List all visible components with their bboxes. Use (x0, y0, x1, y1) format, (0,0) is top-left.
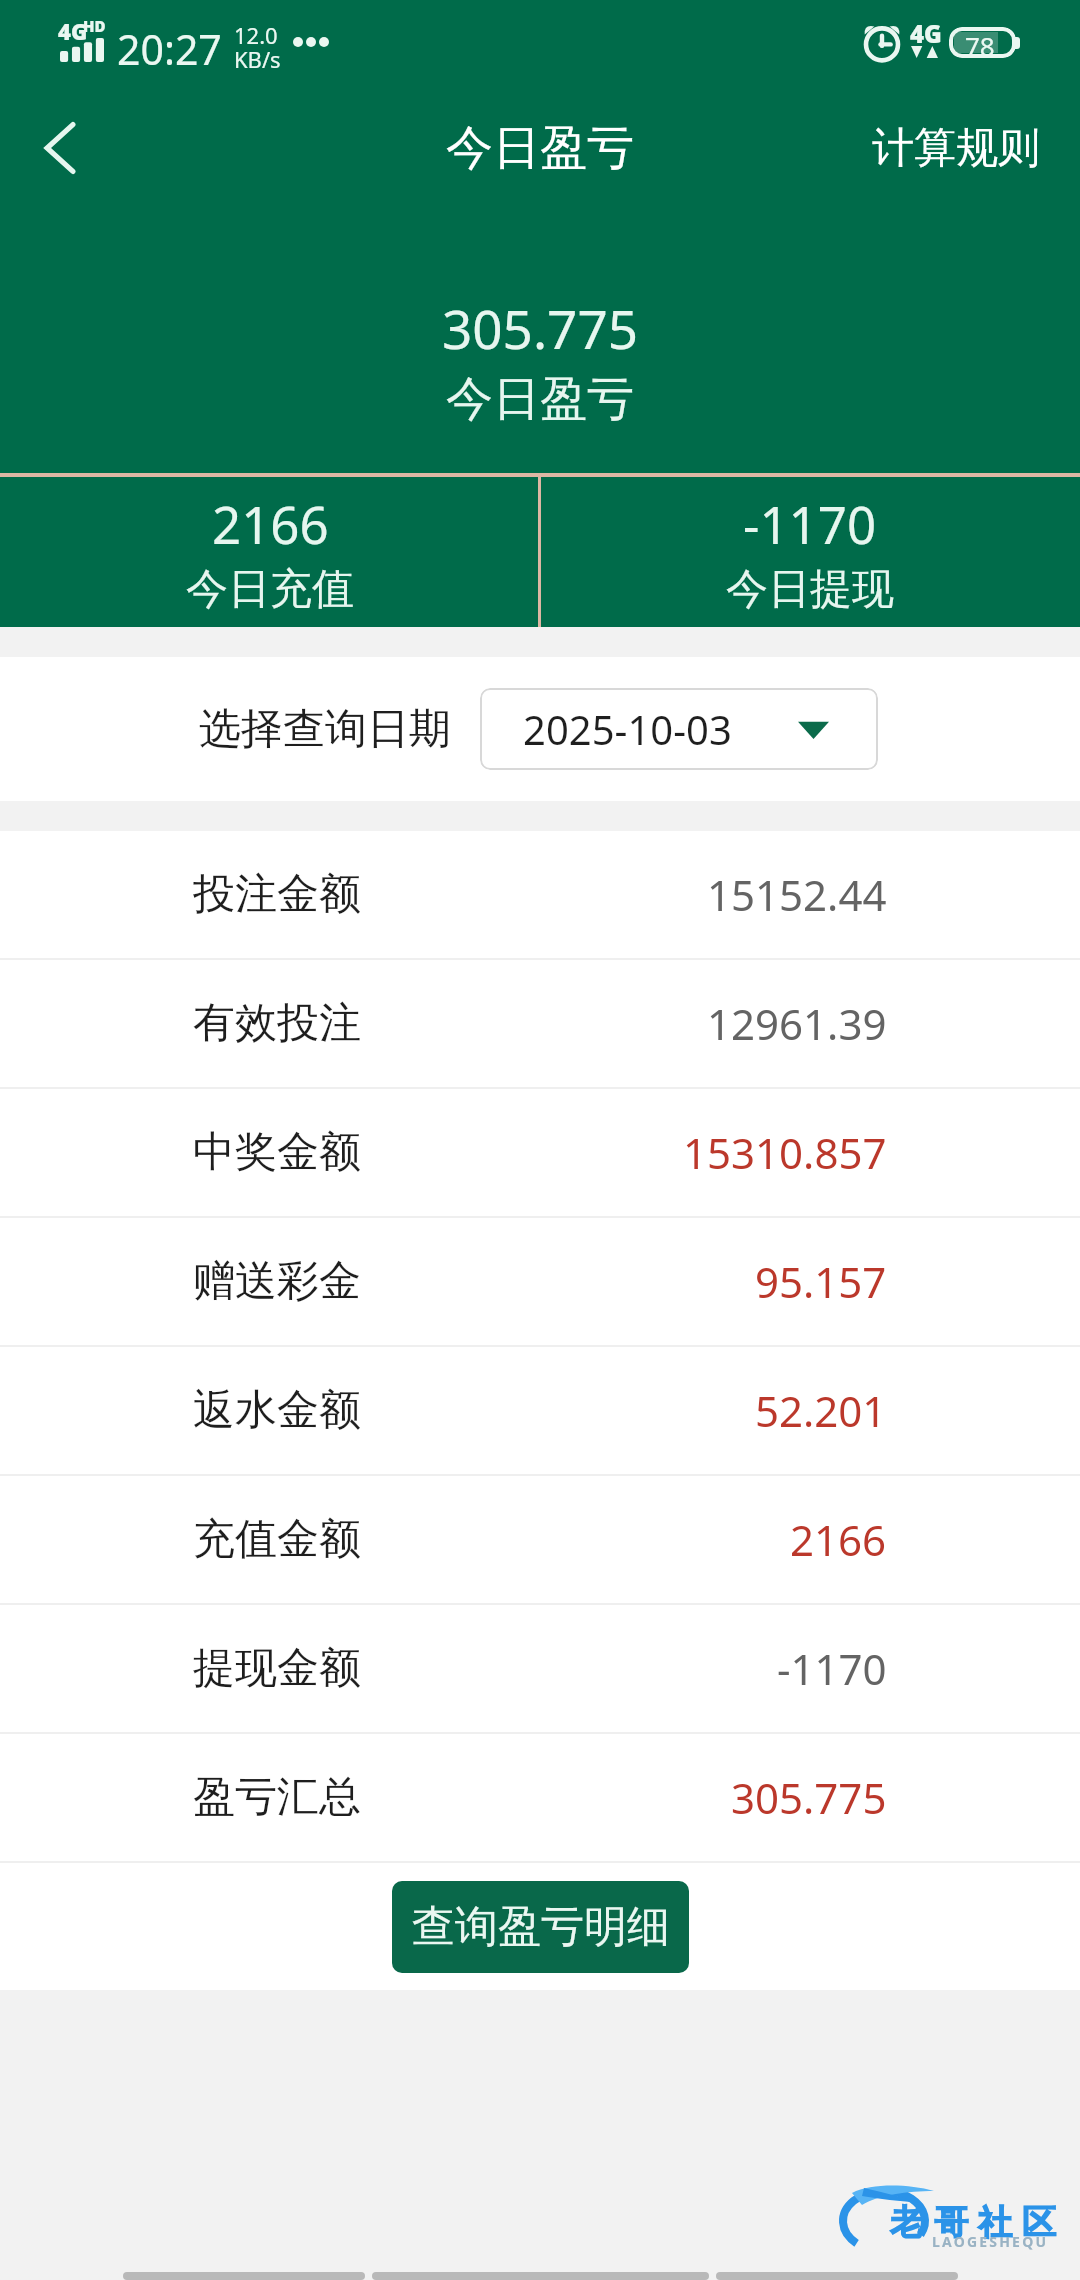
staticText: 选择查询日期 (199, 703, 451, 756)
staticText: HD (83, 16, 106, 36)
staticText: 计算规则 (872, 122, 1040, 175)
staticText: 今日盈亏 (0, 370, 1080, 429)
staticText: 12.0 (234, 20, 278, 50)
staticText: 12961.39 (707, 995, 887, 1052)
staticText: 4G (58, 16, 88, 46)
staticText: 中奖金额 (193, 1126, 361, 1179)
button[interactable]: 2025-10-03 (480, 688, 878, 770)
staticText: 2025-10-03 (523, 702, 732, 756)
staticText: 今日提现 (726, 563, 894, 616)
staticText: 赠送彩金 (193, 1255, 361, 1308)
staticText: 查询盈亏明细 (412, 1900, 670, 1954)
button[interactable]: 查询盈亏明细 (392, 1881, 689, 1973)
button[interactable]: 提现金额 (0, 1605, 1080, 1732)
button[interactable]: Recents (716, 2272, 958, 2280)
button[interactable]: 返水金额 (0, 1347, 1080, 1474)
staticText: 15152.44 (707, 866, 887, 923)
staticText: 2166 (790, 1511, 887, 1568)
staticText: 今日盈亏 (446, 119, 634, 178)
staticText: 投注金额 (193, 868, 361, 921)
button[interactable]: 中奖金额 (0, 1089, 1080, 1216)
staticText: 有效投注 (193, 997, 361, 1050)
button[interactable]: 有效投注 (0, 960, 1080, 1087)
staticText: 今日充值 (186, 563, 354, 616)
staticText: 52.201 (755, 1382, 887, 1439)
staticText: 95.157 (755, 1253, 887, 1310)
button[interactable]: Back (0, 103, 120, 193)
staticText: 20:27 (117, 21, 222, 77)
button[interactable]: 计算规则 (848, 103, 1080, 193)
staticText: -1170 (777, 1640, 887, 1697)
staticText: 2166 (212, 489, 329, 558)
staticText: 充值金额 (193, 1513, 361, 1566)
staticText: 305.775 (731, 1769, 887, 1826)
staticText: 4G (910, 17, 942, 50)
button[interactable]: 盈亏汇总 (0, 1734, 1080, 1861)
button[interactable]: Home (372, 2272, 709, 2280)
staticText: 盈亏汇总 (193, 1771, 361, 1824)
button[interactable]: 充值金额 (0, 1476, 1080, 1603)
button[interactable]: Back (123, 2272, 365, 2280)
staticText: 老哥社区 (885, 2201, 1061, 2244)
staticText: 返水金额 (193, 1384, 361, 1437)
button[interactable]: -1170 (540, 477, 1080, 627)
button[interactable]: 投注金额 (0, 831, 1080, 958)
staticText: 305.775 (0, 292, 1080, 364)
button[interactable]: 2166 (0, 477, 540, 627)
button[interactable]: 赠送彩金 (0, 1218, 1080, 1345)
staticText: 提现金额 (193, 1642, 361, 1695)
staticText: 15310.857 (683, 1124, 887, 1181)
staticText: LAOGESHEQU (932, 2232, 1049, 2251)
staticText: -1170 (743, 489, 877, 558)
staticText: 78 (965, 28, 995, 58)
staticText: KB/s (234, 44, 281, 74)
